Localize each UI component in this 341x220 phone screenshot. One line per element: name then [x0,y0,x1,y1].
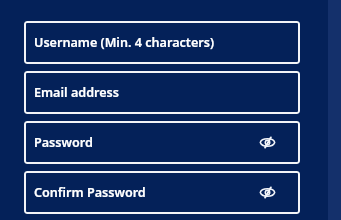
staticText: Username (Min. 4 characters) [34,34,215,51]
staticText: Email address [34,84,120,101]
button[interactable]: Email address [24,71,300,114]
button[interactable]: Password [24,121,300,164]
staticText: Password [34,134,93,151]
staticText: Confirm Password [34,184,146,201]
button[interactable]: Toggle password visibility [249,124,286,161]
button[interactable]: Username (Min. 4 characters) [24,21,300,64]
button[interactable]: Toggle password visibility [249,174,286,211]
button[interactable]: Confirm Password [24,171,300,214]
